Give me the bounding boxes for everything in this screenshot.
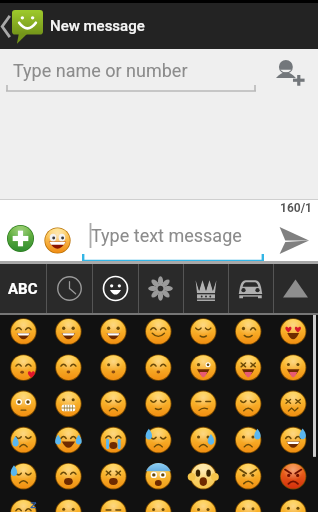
staticText: 160/1 (280, 201, 312, 215)
button[interactable]: Emoticons (92, 264, 138, 313)
button[interactable]: Send (272, 220, 314, 260)
button[interactable]: Attach (2, 220, 38, 256)
button[interactable]: Symbols (273, 264, 318, 313)
button[interactable]: Add recipient (272, 53, 306, 87)
button[interactable]: Places (228, 264, 273, 313)
button[interactable]: Objects (183, 264, 228, 313)
staticText: Type name or number (13, 60, 188, 81)
button[interactable]: Type text message (82, 213, 264, 263)
button[interactable]: Recent (46, 264, 92, 313)
button[interactable]: Letters (0, 264, 46, 313)
staticText: New message (50, 17, 145, 35)
staticText: ABC (8, 280, 38, 298)
staticText: Type text message (91, 225, 242, 246)
button[interactable]: Nature (138, 264, 183, 313)
button[interactable]: Navigate up (0, 3, 46, 49)
button[interactable]: Emoji (39, 222, 75, 258)
